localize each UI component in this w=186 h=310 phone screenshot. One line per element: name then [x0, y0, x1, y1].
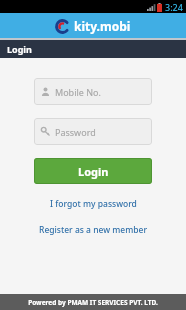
staticText: Login	[78, 164, 109, 179]
staticText: Powered by PMAM IT SERVICES PVT. LTD.	[28, 298, 158, 307]
button[interactable]: Login	[34, 158, 152, 184]
staticText: Register as a new member	[39, 224, 147, 236]
staticText: Mobile No.	[55, 86, 101, 98]
staticText: Login	[7, 43, 32, 55]
button[interactable]: Register as a new member	[34, 224, 152, 236]
staticText: 3:24	[165, 1, 183, 13]
button[interactable]: Mobile No.	[34, 78, 152, 105]
staticText: kity.mobi	[74, 18, 131, 34]
button[interactable]: I forgot my password	[34, 198, 152, 210]
button[interactable]: Password	[34, 118, 152, 145]
staticText: I forgot my password	[50, 198, 137, 210]
staticText: Password	[55, 126, 96, 138]
